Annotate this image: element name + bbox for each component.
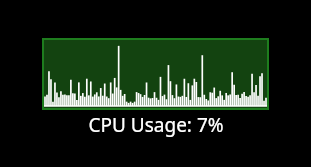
staticText: CPU Usage: 7% xyxy=(88,112,224,138)
button[interactable]: CPU Usage: 7% xyxy=(0,112,311,138)
button[interactable]: CPU usage history graph xyxy=(44,40,267,108)
